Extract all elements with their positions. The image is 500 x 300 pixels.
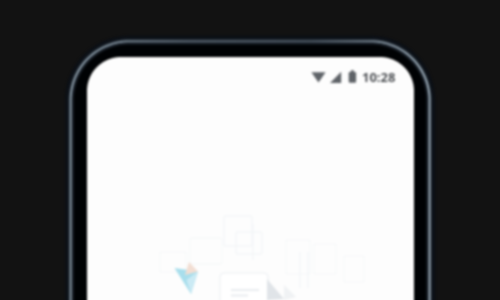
button[interactable]: Clock 10:28 [362, 68, 396, 86]
staticText: 10:28 [362, 68, 396, 86]
